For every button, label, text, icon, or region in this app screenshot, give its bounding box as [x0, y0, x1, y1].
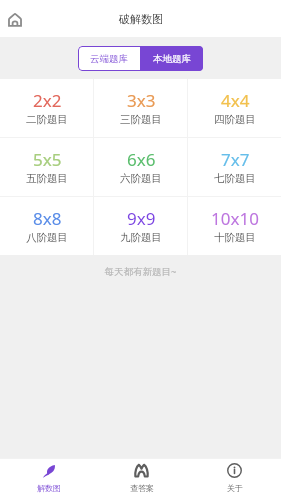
- button[interactable]: 8x8: [0, 197, 93, 255]
- staticText: 本地题库: [153, 53, 191, 65]
- button[interactable]: 云端题库: [78, 46, 140, 71]
- button[interactable]: 5x5: [0, 138, 93, 196]
- staticText: 5x5: [33, 148, 62, 171]
- staticText: 关于: [227, 483, 243, 493]
- button[interactable]: 4x4: [188, 79, 281, 137]
- staticText: 9x9: [127, 207, 156, 230]
- staticText: 10x10: [211, 207, 259, 230]
- button[interactable]: 10x10: [188, 197, 281, 255]
- staticText: 七阶题目: [214, 172, 256, 185]
- button[interactable]: 2x2: [0, 79, 93, 137]
- staticText: 7x7: [221, 148, 250, 171]
- staticText: 十阶题目: [214, 231, 256, 244]
- button[interactable]: 解数图: [2, 458, 95, 500]
- staticText: 云端题库: [90, 53, 128, 65]
- button[interactable]: 9x9: [94, 197, 187, 255]
- staticText: 五阶题目: [26, 172, 68, 185]
- staticText: 破解数图: [119, 12, 163, 26]
- staticText: 九阶题目: [120, 231, 162, 244]
- staticText: 3x3: [127, 89, 156, 112]
- staticText: 八阶题目: [26, 231, 68, 244]
- staticText: 二阶题目: [26, 113, 68, 126]
- button[interactable]: 7x7: [188, 138, 281, 196]
- staticText: 6x6: [127, 148, 156, 171]
- button[interactable]: 查答案: [95, 458, 188, 500]
- staticText: 4x4: [221, 89, 250, 112]
- staticText: 每天都有新题目~: [0, 265, 281, 278]
- staticText: 2x2: [33, 89, 62, 112]
- button[interactable]: 3x3: [94, 79, 187, 137]
- button[interactable]: Home: [3, 8, 27, 32]
- staticText: 查答案: [130, 483, 154, 493]
- staticText: 六阶题目: [120, 172, 162, 185]
- staticText: 8x8: [33, 207, 62, 230]
- staticText: 解数图: [37, 483, 61, 493]
- staticText: 三阶题目: [120, 113, 162, 126]
- button[interactable]: 本地题库: [140, 46, 203, 71]
- button[interactable]: 关于: [188, 458, 281, 500]
- button[interactable]: 6x6: [94, 138, 187, 196]
- staticText: 四阶题目: [214, 113, 256, 126]
